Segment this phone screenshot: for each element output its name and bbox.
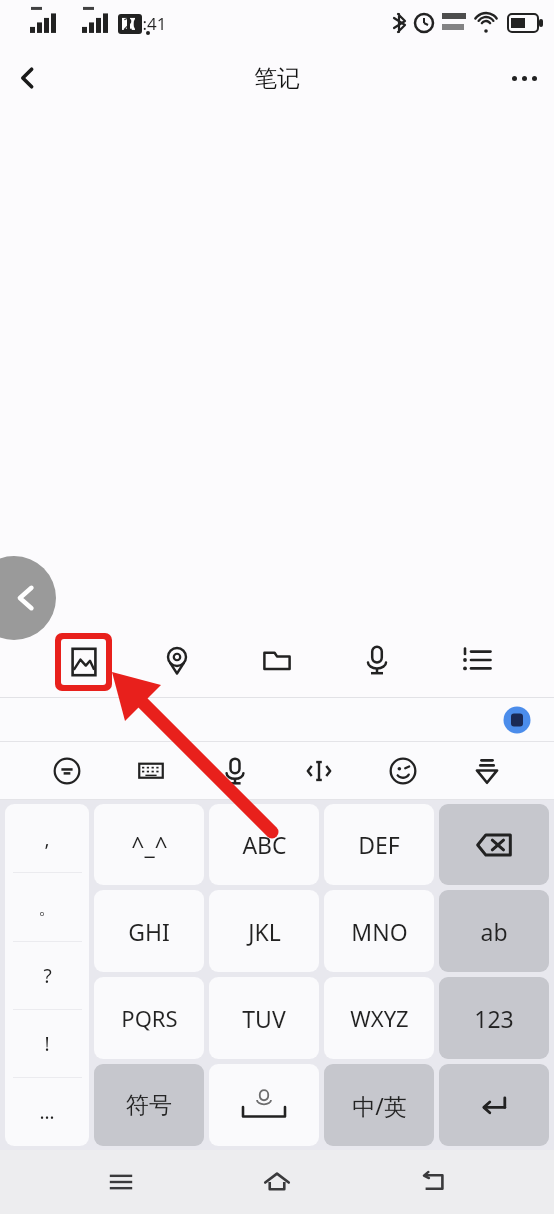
button[interactable]: ^_^: [94, 804, 204, 885]
button[interactable]: DEF: [324, 804, 434, 885]
button[interactable]: Voice input: [348, 631, 406, 689]
button[interactable]: Back: [0, 50, 56, 106]
staticText: ,: [44, 826, 50, 852]
button[interactable]: More options: [494, 48, 554, 108]
staticText: JKL: [248, 916, 281, 947]
staticText: 123: [474, 1003, 514, 1034]
button[interactable]: Cursor: [294, 746, 344, 796]
button[interactable]: Home: [241, 1150, 313, 1214]
staticText: TUV: [242, 1003, 286, 1034]
button[interactable]: Location: [148, 631, 206, 689]
staticText: 中/英: [352, 1090, 407, 1121]
staticText: ?: [43, 963, 52, 989]
button[interactable]: Insert image: [48, 631, 106, 689]
button[interactable]: Keyboard layout: [126, 746, 176, 796]
staticText: MNO: [351, 916, 408, 947]
staticText: ^_^: [131, 829, 168, 860]
button[interactable]: space: [209, 1064, 319, 1146]
button[interactable]: Hide keyboard: [462, 746, 512, 796]
staticText: 20:41: [123, 12, 167, 35]
button[interactable]: GHI: [94, 890, 204, 972]
staticText: !: [44, 1031, 50, 1057]
button[interactable]: TUV: [209, 977, 319, 1059]
button[interactable]: ab: [439, 890, 549, 972]
staticText: 符号: [126, 1091, 172, 1120]
button[interactable]: Checklist: [448, 631, 506, 689]
staticText: 笔记: [254, 64, 300, 93]
button[interactable]: 。: [5, 873, 89, 942]
button[interactable]: Language: [42, 746, 92, 796]
button[interactable]: Sogou input: [502, 705, 532, 735]
button[interactable]: Recent apps: [85, 1150, 157, 1214]
button[interactable]: backspace: [439, 804, 549, 885]
button[interactable]: PQRS: [94, 977, 204, 1059]
button[interactable]: 123: [439, 977, 549, 1059]
staticText: WXYZ: [350, 1003, 409, 1033]
staticText: ab: [480, 916, 508, 947]
button[interactable]: WXYZ: [324, 977, 434, 1059]
staticText: DEF: [358, 829, 400, 860]
button[interactable]: …: [5, 1078, 89, 1146]
button[interactable]: Back: [398, 1150, 470, 1214]
button[interactable]: 符号: [94, 1064, 204, 1146]
button[interactable]: Emoji: [378, 746, 428, 796]
button[interactable]: Back: [0, 556, 56, 640]
button[interactable]: JKL: [209, 890, 319, 972]
button[interactable]: 中/英: [324, 1064, 434, 1146]
button[interactable]: ,: [5, 804, 89, 873]
button[interactable]: !: [5, 1010, 89, 1078]
staticText: ABC: [242, 829, 287, 860]
staticText: GHI: [128, 916, 170, 947]
button[interactable]: ?: [5, 942, 89, 1010]
staticText: …: [39, 1099, 55, 1125]
button[interactable]: MNO: [324, 890, 434, 972]
staticText: 。: [38, 896, 57, 920]
button[interactable]: Files: [248, 631, 306, 689]
button[interactable]: ABC: [209, 804, 319, 885]
button[interactable]: Voice: [210, 746, 260, 796]
button[interactable]: enter: [439, 1064, 549, 1146]
staticText: PQRS: [121, 1003, 178, 1033]
